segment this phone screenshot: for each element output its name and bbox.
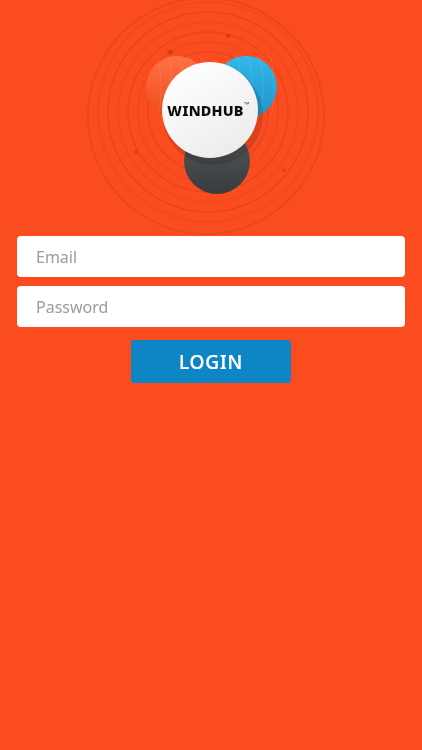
- staticText: ™: [244, 100, 250, 110]
- staticText: Password: [36, 296, 109, 318]
- button[interactable]: Email: [17, 236, 405, 277]
- button[interactable]: LOGIN: [131, 340, 291, 383]
- staticText: WINDHUB: [167, 100, 244, 120]
- button[interactable]: Password: [17, 286, 405, 327]
- staticText: LOGIN: [179, 349, 243, 375]
- other: WINDHUB logo: [90, 0, 330, 210]
- staticText: Email: [36, 246, 78, 268]
